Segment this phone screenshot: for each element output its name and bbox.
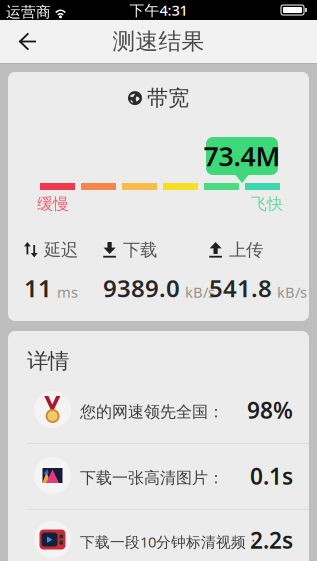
- staticText: 详情: [27, 348, 69, 374]
- staticText: kB/s: [277, 282, 307, 302]
- staticText: 测速结果: [112, 28, 204, 55]
- staticText: 11: [24, 272, 52, 304]
- staticText: 541.8: [209, 272, 272, 304]
- staticText: 2.2s: [250, 525, 293, 555]
- staticText: 73.4M: [203, 138, 280, 174]
- staticText: 飞快: [251, 194, 283, 214]
- button[interactable]: 返回: [0, 20, 54, 63]
- button[interactable]: 下载一张高清图片：: [8, 443, 309, 509]
- button[interactable]: 下载一段10分钟标清视频：: [8, 507, 309, 561]
- staticText: kB/s: [185, 282, 215, 302]
- staticText: 上传: [229, 239, 263, 261]
- staticText: 下午4:31: [129, 0, 187, 20]
- staticText: 运营商: [6, 3, 51, 21]
- staticText: 下载: [123, 239, 157, 261]
- staticText: 9389.0: [103, 272, 180, 304]
- staticText: 延迟: [44, 239, 78, 261]
- staticText: 下载一段10分钟标清视频：: [80, 532, 261, 551]
- staticText: 缓慢: [37, 194, 69, 214]
- staticText: ms: [57, 282, 78, 302]
- staticText: 下载一张高清图片：: [80, 468, 224, 488]
- button[interactable]: 您的网速领先全国：: [8, 377, 309, 443]
- staticText: 0.1s: [250, 461, 293, 491]
- staticText: 带宽: [147, 85, 189, 111]
- staticText: 您的网速领先全国：: [80, 402, 224, 422]
- staticText: 98%: [247, 395, 293, 425]
